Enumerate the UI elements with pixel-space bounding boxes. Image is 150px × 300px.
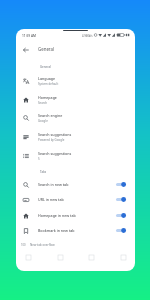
button[interactable]: Toolbar action 0: [22, 251, 34, 263]
staticText: URL in new tab: [38, 197, 116, 202]
button[interactable]: Back: [20, 44, 31, 55]
button[interactable]: Search suggestions: [16, 127, 135, 146]
staticText: Language: [38, 76, 56, 81]
button[interactable]: Toolbar action 1: [54, 251, 66, 263]
staticText: 100: [21, 243, 26, 247]
staticText: Bookmark in new tab: [38, 228, 116, 233]
button[interactable]: Homepage: [16, 90, 135, 109]
staticText: Search engine: [38, 113, 63, 118]
staticText: System default: [38, 82, 59, 86]
button[interactable]: Search suggestions: [16, 146, 135, 165]
button[interactable]: Search engine: [16, 108, 135, 127]
staticText: Search in new tab: [38, 182, 116, 187]
staticText: General: [40, 65, 51, 69]
staticText: Search: [38, 101, 48, 105]
button[interactable]: URL in new tab: [16, 192, 135, 207]
staticText: General: [38, 46, 55, 52]
staticText: Google: [38, 119, 48, 123]
button[interactable]: Homepage in new tab: [16, 208, 135, 223]
staticText: Homepage in new tab: [38, 213, 116, 218]
staticText: New tab overflow: [30, 243, 55, 247]
staticText: Powered by Google: [38, 138, 65, 142]
staticText: 5: [38, 157, 40, 161]
button[interactable]: Toolbar action 2: [85, 251, 97, 263]
staticText: Homepage: [38, 95, 57, 100]
staticText: 4.96Kb/s: [82, 34, 93, 38]
staticText: Search suggestions: [38, 151, 72, 156]
staticText: Tabs: [40, 170, 47, 174]
button[interactable]: Toolbar action 3: [117, 251, 129, 263]
staticText: Search suggestions: [38, 132, 72, 137]
button[interactable]: Search in new tab: [16, 177, 135, 192]
button[interactable]: Bookmark in new tab: [16, 223, 135, 238]
staticText: 11:59 AM: [22, 34, 37, 38]
button[interactable]: Language: [16, 71, 135, 90]
